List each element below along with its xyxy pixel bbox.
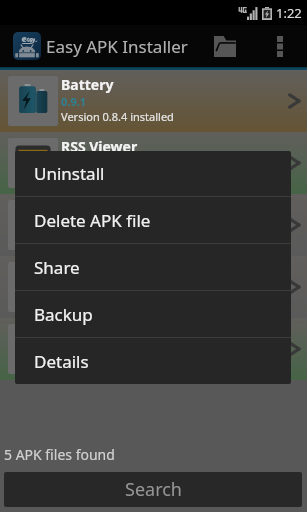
staticText: Version 0.8.4 installed <box>61 109 174 124</box>
staticText: Uninstall <box>34 162 105 185</box>
staticText: 0.9.1 <box>61 94 87 109</box>
staticText: 2.4.1 <box>61 218 87 233</box>
staticText: Not installed <box>61 233 127 248</box>
staticText: Easy APK Installer <box>46 35 188 58</box>
button[interactable]: Search <box>4 472 302 507</box>
button[interactable]: Uninstall <box>15 151 291 196</box>
staticText: 1.2.0 <box>61 156 87 171</box>
staticText: Delete APK file <box>34 209 151 232</box>
staticText: Backup <box>34 303 93 326</box>
button[interactable]: More options <box>256 25 304 67</box>
staticText: Music Box <box>61 261 132 280</box>
staticText: Photo Editor <box>61 323 148 342</box>
staticText: Version 1.1.0 installed <box>61 171 174 186</box>
staticText: 1:22 <box>276 4 302 22</box>
staticText: RSS Viewer <box>61 137 138 156</box>
staticText: Not installed <box>61 295 127 310</box>
button[interactable]: Music Box <box>0 256 307 318</box>
button[interactable]: RSS Viewer <box>0 132 307 194</box>
staticText: 1.8.0 <box>61 342 87 357</box>
button[interactable]: File Manager <box>0 194 307 256</box>
staticText: Version 1.7 installed <box>61 357 165 372</box>
staticText: Details <box>34 350 89 373</box>
button[interactable]: Delete APK file <box>15 197 291 243</box>
staticText: Share <box>34 256 80 279</box>
button[interactable]: Photo Editor <box>0 318 307 380</box>
staticText: File Manager <box>61 199 152 218</box>
staticText: Battery <box>61 75 114 94</box>
button[interactable]: Backup <box>15 291 291 337</box>
button[interactable]: Battery <box>0 70 307 132</box>
button[interactable]: Share <box>15 244 291 290</box>
staticText: 5 APK files found <box>4 445 115 464</box>
button[interactable]: Details <box>15 338 291 384</box>
staticText: Search <box>125 477 182 502</box>
staticText: 3.0.2 <box>61 280 87 295</box>
button[interactable]: Open folder <box>194 25 256 67</box>
